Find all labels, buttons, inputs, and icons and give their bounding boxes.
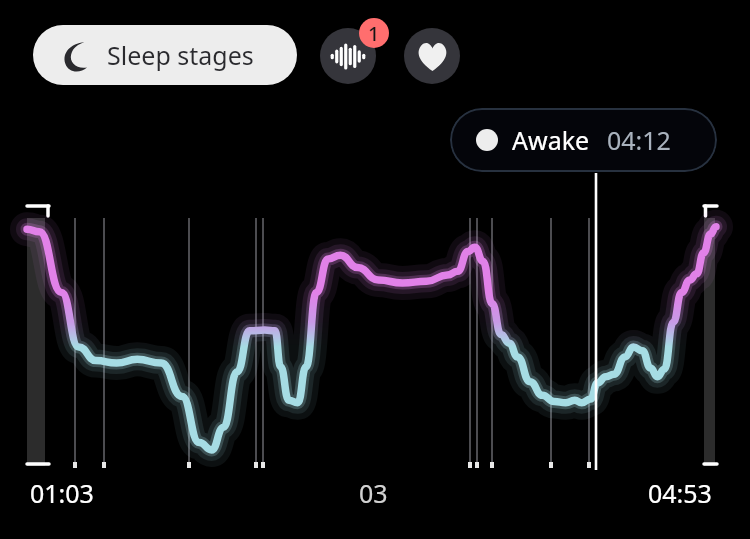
staticText: 04:53	[648, 476, 712, 510]
button[interactable]: Sleep stages	[33, 25, 297, 85]
staticText: 04:12	[607, 123, 671, 157]
staticText: 03	[359, 476, 388, 510]
button[interactable]: Heart rate	[404, 28, 460, 84]
button[interactable]: Sleep sounds	[320, 28, 376, 84]
staticText: Awake	[512, 123, 590, 157]
staticText: 01:03	[30, 476, 94, 510]
button[interactable]: Awake	[450, 108, 717, 172]
staticText: Sleep stages	[107, 38, 254, 72]
staticText: 1	[368, 20, 380, 47]
